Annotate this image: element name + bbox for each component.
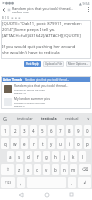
staticText: ↲ bbox=[83, 180, 87, 185]
button[interactable]: r bbox=[30, 138, 37, 149]
staticText: testicular bbox=[17, 116, 33, 121]
button[interactable]: Recents bbox=[66, 189, 77, 200]
staticText: Upload a File bbox=[45, 62, 62, 66]
button[interactable]: Active Threads bbox=[2, 77, 90, 82]
staticText: s bbox=[18, 154, 21, 160]
button[interactable]: n bbox=[61, 164, 68, 175]
staticText: ⌫ bbox=[82, 167, 89, 172]
button[interactable]: 3 bbox=[21, 125, 28, 136]
staticText: l bbox=[82, 154, 84, 160]
button[interactable]: Post Reply bbox=[24, 61, 41, 67]
staticText: g bbox=[45, 154, 48, 160]
staticText: My london summer pics bbox=[14, 97, 50, 101]
staticText: . bbox=[71, 180, 73, 186]
staticText: q bbox=[4, 141, 7, 147]
button[interactable]: o bbox=[75, 138, 82, 149]
staticText: a bbox=[9, 154, 12, 160]
button[interactable]: m bbox=[70, 164, 77, 175]
button[interactable]: Back bbox=[0, 6, 7, 13]
staticText: 9 bbox=[77, 128, 80, 134]
button[interactable]: 1 bbox=[1, 125, 9, 136]
staticText: Active Threads bbox=[3, 78, 23, 82]
staticText: 5 bbox=[41, 128, 44, 134]
button[interactable]: b bbox=[52, 164, 59, 175]
staticText: Random pics that you took) thread... bbox=[12, 6, 74, 11]
button[interactable]: . bbox=[68, 177, 76, 188]
button[interactable]: x bbox=[25, 164, 32, 175]
staticText: j bbox=[64, 154, 66, 160]
staticText: n bbox=[63, 167, 66, 173]
button[interactable]: 7 bbox=[57, 125, 64, 136]
staticText: 2014"]Some peeps I tell ya. bbox=[2, 27, 56, 33]
staticText: Post Reply bbox=[26, 62, 39, 66]
staticText: w bbox=[13, 141, 17, 147]
button[interactable]: ?123 bbox=[1, 177, 15, 188]
button[interactable]: l bbox=[79, 151, 86, 162]
button[interactable]: My london summer pics bbox=[2, 95, 90, 108]
button[interactable]: 2 bbox=[11, 125, 19, 136]
button[interactable]: 6 bbox=[48, 125, 55, 136]
button[interactable]: e bbox=[21, 138, 28, 149]
button[interactable]: z bbox=[16, 164, 23, 175]
button[interactable]: s bbox=[16, 151, 23, 162]
button[interactable]: Back bbox=[15, 189, 26, 200]
staticText: B I U ≡ ≡ ≡ bbox=[2, 16, 21, 20]
staticText: d bbox=[27, 154, 30, 160]
button[interactable]: 9 bbox=[75, 125, 82, 136]
staticText: 3 bbox=[23, 128, 26, 134]
button[interactable]: ⇧ bbox=[1, 164, 14, 175]
button[interactable]: t bbox=[39, 138, 46, 149]
button[interactable]: ⌫ bbox=[79, 164, 91, 175]
staticText: [QUOTE="Oak11, post: 879911, member: bbox=[2, 21, 82, 27]
button[interactable]: Home bbox=[41, 189, 52, 200]
staticText: i bbox=[69, 141, 71, 147]
button[interactable]: 5 bbox=[39, 125, 46, 136]
staticText: h bbox=[54, 154, 57, 160]
button[interactable]: 8 bbox=[66, 125, 73, 136]
button[interactable]: More options bbox=[85, 6, 92, 13]
button[interactable]: ↲ bbox=[78, 177, 91, 188]
button[interactable]: h bbox=[52, 151, 59, 162]
staticText: allanpoe in Search Off Topic bbox=[14, 101, 46, 104]
staticText: 6 bbox=[50, 128, 53, 134]
staticText: y bbox=[50, 141, 53, 147]
button[interactable]: Random pics that you took) thread... bbox=[2, 82, 90, 95]
staticText: o bbox=[77, 141, 80, 147]
staticText: r bbox=[33, 141, 35, 147]
button[interactable]: c bbox=[34, 164, 41, 175]
button[interactable]: 0 bbox=[84, 125, 91, 136]
staticText: k bbox=[72, 154, 75, 160]
button[interactable]: y bbox=[48, 138, 55, 149]
staticText: u bbox=[59, 141, 62, 147]
button[interactable]: i bbox=[66, 138, 73, 149]
button[interactable]: Upload a File bbox=[43, 61, 64, 67]
staticText: 0 bbox=[86, 128, 89, 134]
staticText: residual bbox=[65, 116, 79, 121]
staticText: 8 bbox=[68, 128, 71, 134]
button[interactable]: a bbox=[7, 151, 14, 162]
button[interactable]: 4 bbox=[30, 125, 37, 136]
staticText: , bbox=[20, 180, 22, 186]
button[interactable]: More Options... bbox=[66, 61, 91, 67]
button[interactable]: f bbox=[34, 151, 41, 162]
button[interactable]: d bbox=[25, 151, 32, 162]
staticText: c bbox=[36, 167, 39, 173]
button[interactable]: w bbox=[11, 138, 19, 149]
button[interactable]: g bbox=[43, 151, 50, 162]
staticText: 7 bbox=[59, 128, 62, 134]
button[interactable]: j bbox=[61, 151, 68, 162]
button[interactable]: q bbox=[1, 138, 9, 149]
staticText: e bbox=[23, 141, 26, 147]
button[interactable]: k bbox=[70, 151, 77, 162]
staticText: ▲ 9:54 bbox=[79, 1, 90, 6]
staticText: testicula bbox=[41, 116, 57, 121]
staticText: 4 bbox=[32, 128, 35, 134]
button[interactable]: v bbox=[43, 164, 50, 175]
button[interactable]: u bbox=[57, 138, 64, 149]
button[interactable]: p bbox=[84, 138, 91, 149]
staticText: Replies: 47 bbox=[14, 91, 27, 94]
staticText: p bbox=[86, 141, 89, 147]
staticText: she wouldn't have to redicula bbox=[2, 50, 60, 56]
button[interactable]: , bbox=[17, 177, 25, 188]
